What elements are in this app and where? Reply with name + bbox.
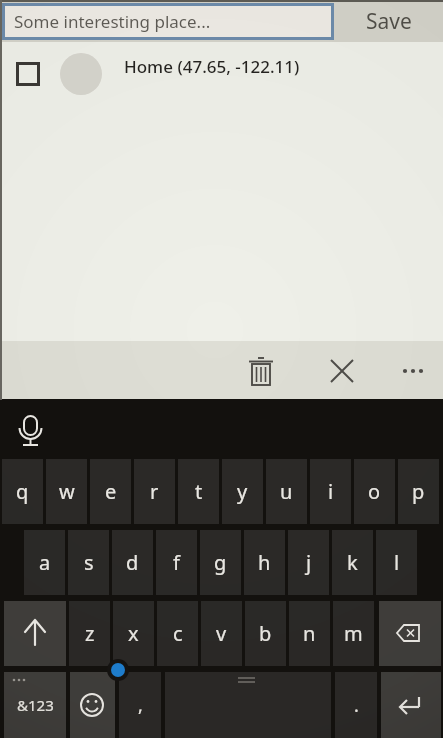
button[interactable]: Home (47.65, -122.11): [0, 53, 443, 95]
button[interactable]: &123: [4, 672, 66, 738]
staticText: .: [354, 693, 359, 718]
button[interactable]: Some interesting place...: [2, 3, 334, 40]
staticText: n: [303, 620, 316, 647]
button[interactable]: j: [288, 530, 329, 595]
staticText: &123: [17, 695, 54, 715]
staticText: m: [344, 620, 363, 647]
staticText: o: [368, 478, 381, 505]
button[interactable]: Save: [334, 0, 443, 42]
button[interactable]: z: [69, 601, 110, 666]
staticText: Save: [366, 7, 412, 36]
button[interactable]: p: [398, 459, 439, 524]
staticText: y: [237, 478, 248, 505]
staticText: e: [105, 478, 117, 505]
button[interactable]: x: [113, 601, 154, 666]
button[interactable]: [70, 672, 115, 738]
button[interactable]: b: [245, 601, 286, 666]
button[interactable]: [4, 601, 66, 666]
staticText: ,: [138, 693, 143, 718]
staticText: f: [173, 549, 180, 576]
staticText: a: [39, 549, 51, 576]
staticText: p: [412, 478, 425, 505]
button[interactable]: c: [157, 601, 198, 666]
staticText: b: [259, 620, 272, 647]
button[interactable]: e: [90, 459, 131, 524]
button[interactable]: [238, 348, 284, 394]
button[interactable]: r: [134, 459, 175, 524]
button[interactable]: [379, 601, 441, 666]
button[interactable]: k: [332, 530, 373, 595]
button[interactable]: i: [310, 459, 351, 524]
button[interactable]: w: [46, 459, 87, 524]
button[interactable]: a: [24, 530, 65, 595]
button[interactable]: [165, 672, 331, 738]
staticText: j: [306, 549, 312, 576]
button[interactable]: d: [112, 530, 153, 595]
staticText: u: [280, 478, 293, 505]
button[interactable]: [10, 407, 52, 451]
button[interactable]: g: [200, 530, 241, 595]
staticText: v: [216, 620, 227, 647]
button[interactable]: ,: [119, 672, 161, 738]
button[interactable]: v: [201, 601, 242, 666]
staticText: i: [328, 478, 334, 505]
button[interactable]: s: [68, 530, 109, 595]
staticText: z: [85, 620, 95, 647]
button[interactable]: [319, 348, 365, 394]
staticText: r: [150, 478, 159, 505]
staticText: h: [258, 549, 271, 576]
button[interactable]: h: [244, 530, 285, 595]
button[interactable]: t: [178, 459, 219, 524]
button[interactable]: m: [333, 601, 374, 666]
staticText: g: [214, 549, 227, 576]
staticText: c: [173, 620, 183, 647]
staticText: q: [16, 478, 29, 505]
button[interactable]: l: [376, 530, 417, 595]
button[interactable]: o: [354, 459, 395, 524]
staticText: s: [84, 549, 94, 576]
staticText: d: [126, 549, 139, 576]
button[interactable]: y: [222, 459, 263, 524]
staticText: w: [59, 478, 75, 505]
button[interactable]: n: [289, 601, 330, 666]
staticText: t: [195, 478, 203, 505]
staticText: x: [128, 620, 139, 647]
staticText: Some interesting place...: [14, 10, 211, 33]
button[interactable]: u: [266, 459, 307, 524]
button[interactable]: [395, 348, 435, 394]
button[interactable]: .: [335, 672, 377, 738]
button[interactable]: [381, 672, 441, 738]
staticText: l: [394, 549, 400, 576]
button[interactable]: q: [2, 459, 43, 524]
button[interactable]: f: [156, 530, 197, 595]
staticText: Home (47.65, -122.11): [124, 55, 300, 78]
staticText: k: [347, 549, 358, 576]
